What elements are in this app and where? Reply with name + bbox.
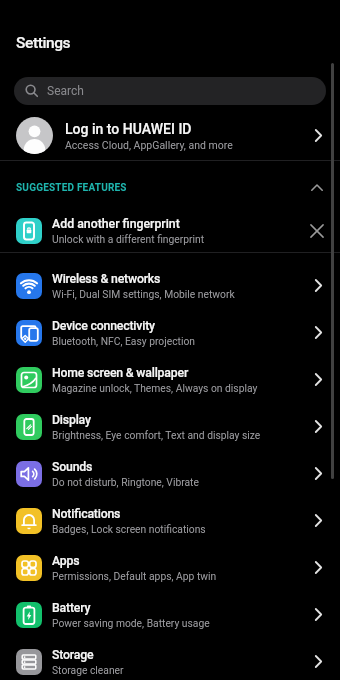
button[interactable]: Home screen & wallpaper [0, 356, 340, 403]
staticText: Apps [52, 554, 80, 568]
button[interactable]: Sounds [0, 450, 340, 497]
staticText: Wi-Fi, Dual SIM settings, Mobile network [52, 288, 235, 300]
button[interactable]: Log in to HUAWEI ID [0, 111, 340, 160]
staticText: Access Cloud, AppGallery, and more [65, 139, 233, 151]
button[interactable]: Search [14, 77, 326, 105]
button[interactable]: Wireless & networks [0, 262, 340, 309]
staticText: Search [47, 84, 84, 98]
staticText: Home screen & wallpaper [52, 366, 189, 380]
staticText: Battery [52, 601, 91, 615]
staticText: Bluetooth, NFC, Easy projection [52, 335, 195, 347]
staticText: Storage cleaner [52, 664, 124, 676]
button[interactable]: Battery [0, 591, 340, 638]
staticText: Storage [52, 648, 94, 662]
staticText: Device connectivity [52, 319, 155, 333]
staticText: Display [52, 413, 91, 427]
staticText: Badges, Lock screen notifications [52, 523, 206, 535]
button[interactable]: Apps [0, 544, 340, 591]
staticText: SUGGESTED FEATURES [16, 182, 127, 194]
staticText: Permissions, Default apps, App twin [52, 570, 217, 582]
button[interactable] [311, 184, 323, 191]
staticText: Add another fingerprint [52, 217, 180, 231]
staticText: Do not disturb, Ringtone, Vibrate [52, 476, 199, 488]
button[interactable]: Add another fingerprint [0, 214, 340, 252]
button[interactable]: Device connectivity [0, 309, 340, 356]
staticText: Log in to HUAWEI ID [65, 121, 192, 137]
staticText: Brightness, Eye comfort, Text and displa… [52, 429, 261, 441]
button[interactable]: Storage [0, 638, 340, 680]
button[interactable]: Display [0, 403, 340, 450]
staticText: Wireless & networks [52, 272, 161, 286]
staticText: Power saving mode, Battery usage [52, 617, 210, 629]
staticText: Unlock with a different fingerprint [52, 233, 205, 245]
staticText: Magazine unlock, Themes, Always on displ… [52, 382, 258, 394]
staticText: Sounds [52, 460, 93, 474]
staticText: Settings [16, 34, 71, 52]
button[interactable]: Notifications [0, 497, 340, 544]
staticText: Notifications [52, 507, 121, 521]
